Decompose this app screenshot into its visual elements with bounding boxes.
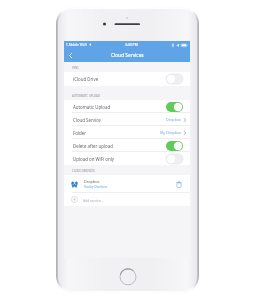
button[interactable]: Delete after upload — [64, 139, 190, 152]
staticText: My Dropbox — [160, 130, 182, 135]
button[interactable]: iCloud Drive — [64, 72, 190, 86]
staticText: Dropbox — [166, 117, 182, 122]
staticText: Dropbox — [84, 179, 100, 184]
staticText: Cloud Services — [111, 52, 144, 59]
button[interactable]: Add service... — [64, 193, 190, 206]
button[interactable]: Folder — [64, 126, 190, 139]
other: Delete account — [176, 181, 182, 188]
staticText: iCloud Drive — [73, 76, 166, 82]
staticText: Bradley Chambers — [84, 185, 108, 189]
button[interactable]: Upload on WiFi only — [64, 152, 190, 165]
staticText: Folder — [73, 130, 160, 136]
staticText: 3:43 PM — [125, 42, 138, 47]
button[interactable]: Automatic Upload — [64, 100, 190, 113]
button[interactable]: Dropbox — [64, 175, 190, 193]
button[interactable]: Back — [64, 48, 76, 62]
staticText: Automatic Upload — [73, 104, 166, 110]
staticText: Add service... — [83, 198, 104, 202]
staticText: CLOUD SERVICES — [72, 169, 95, 173]
button[interactable]: Cloud Service — [64, 113, 190, 126]
staticText: Delete after upload — [73, 143, 166, 149]
staticText: Cloud Service — [73, 117, 166, 123]
staticText: AUTOMATIC UPLOAD — [72, 94, 100, 98]
staticText: SYNC — [72, 66, 80, 70]
staticText: T-Mobile Wi-Fi — [66, 43, 88, 47]
staticText: Upload on WiFi only — [73, 156, 166, 162]
